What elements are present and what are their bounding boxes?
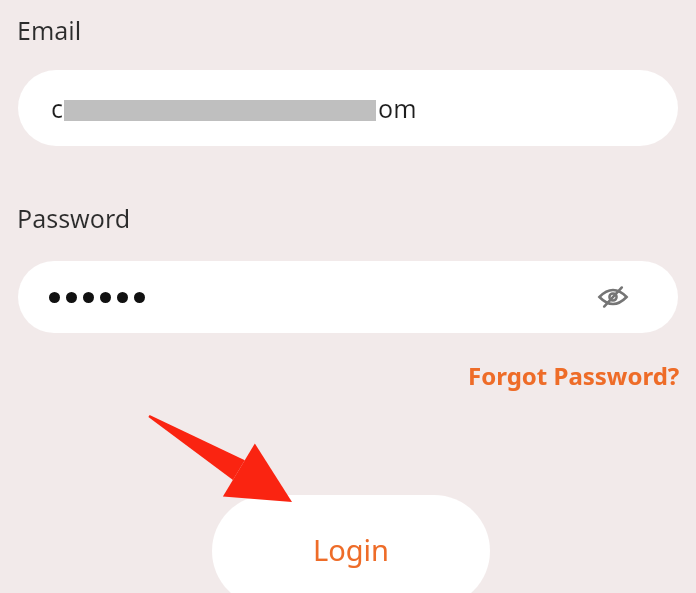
button[interactable]: Show password [593, 277, 633, 317]
staticText: Email [17, 13, 82, 47]
staticText: Login [313, 530, 389, 569]
button[interactable]: Login [212, 495, 490, 593]
staticText: Password [17, 201, 131, 235]
button[interactable]: Show password [18, 261, 678, 333]
staticText: om [378, 91, 417, 125]
button[interactable]: c [18, 70, 678, 146]
button[interactable]: Forgot Password? [466, 357, 682, 394]
staticText: Forgot Password? [468, 359, 680, 392]
staticText: c [51, 91, 64, 125]
